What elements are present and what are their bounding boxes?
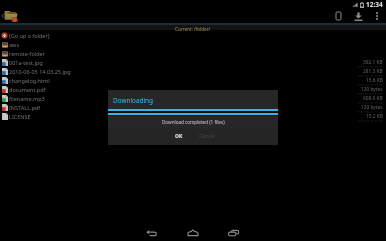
staticText: remote-folder (9, 50, 45, 57)
button[interactable]: Navigate up (0, 9, 20, 23)
staticText: 2010-06-05 17:48 (357, 111, 383, 113)
staticText: Current: /folder/ (175, 26, 211, 32)
staticText: 2010-06-05 17:48 (357, 84, 383, 86)
button[interactable]: Recent apps (227, 227, 241, 241)
button[interactable]: Download (348, 9, 368, 23)
staticText: 2010-06-05 17:48 (357, 75, 383, 77)
button[interactable]: Back (145, 227, 159, 241)
staticText: 12:34 (366, 0, 383, 9)
button[interactable]: [Go up a folder] (0, 32, 386, 41)
button[interactable]: 2010-06-05 14.03.25.jpg (0, 68, 386, 77)
button[interactable]: More options (368, 9, 386, 23)
staticText: 2010-06-05 17:48 (357, 120, 383, 122)
staticText: [Go up a folder] (9, 32, 50, 39)
staticText: 392.1 KB (363, 59, 383, 66)
staticText: changelog.html (9, 77, 50, 84)
button[interactable]: document.pdf (0, 86, 386, 95)
button[interactable]: 001a-test.jpg (0, 59, 386, 68)
button[interactable]: changelog.html (0, 77, 386, 86)
staticText: 15.6 KB (366, 77, 383, 84)
staticText: 001a-test.jpg (9, 59, 43, 66)
button[interactable]: filename.mp3 (0, 95, 386, 104)
staticText: filename.mp3 (9, 95, 45, 102)
staticText: aws (9, 41, 20, 48)
button[interactable]: Cancel (195, 131, 219, 141)
button[interactable]: OK (167, 131, 191, 141)
staticText: 2010-06-05 17:48 (357, 102, 383, 104)
button[interactable]: LICENSE (0, 113, 386, 122)
staticText: 281.3 KB (363, 68, 383, 75)
staticText: Download completed (1 files) (162, 119, 225, 125)
staticText: 608.0 KB (363, 95, 383, 102)
staticText: LICENSE (9, 113, 31, 120)
staticText: INSTALL.pdf (9, 104, 41, 111)
staticText: Cancel (199, 133, 215, 140)
staticText: 15.2 KB (366, 113, 383, 120)
button[interactable]: INSTALL.pdf (0, 104, 386, 113)
button[interactable]: Home (186, 227, 200, 241)
staticText: ... (151, 97, 156, 104)
staticText: document.pdf (9, 86, 46, 93)
staticText: 2010-06-05 17:48 (357, 66, 383, 68)
staticText: 120 bytes (361, 86, 383, 93)
staticText: OK (175, 133, 183, 140)
staticText: Downloading (113, 96, 153, 105)
staticText: 2010-06-05 17:48 (357, 93, 383, 95)
button[interactable]: aws (0, 41, 386, 50)
button[interactable]: Storage (328, 9, 348, 23)
button[interactable]: remote-folder (0, 50, 386, 59)
staticText: 2010-06-05 14.03.25.jpg (9, 68, 71, 75)
staticText: 120 bytes (361, 104, 383, 111)
